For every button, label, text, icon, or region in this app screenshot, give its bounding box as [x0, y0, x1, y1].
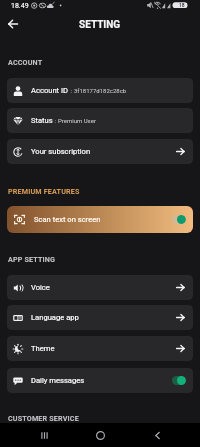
button[interactable]: Language app [7, 305, 193, 330]
button[interactable]: Theme [7, 336, 193, 361]
staticText: Account ID [31, 86, 69, 95]
staticText: 18 [179, 2, 185, 8]
staticText: Your subscription [31, 147, 91, 156]
staticText: Language app [31, 313, 79, 322]
button[interactable]: Home [86, 423, 114, 447]
staticText: CUSTOMER SERVICE [8, 414, 79, 422]
staticText: Voice [31, 283, 50, 292]
button[interactable]: Back [143, 423, 171, 447]
staticText: PREMIUM FEATURES [8, 187, 80, 195]
button[interactable]: Daily messages [7, 368, 193, 393]
staticText: 18.49 [11, 2, 29, 10]
staticText: : [53, 117, 58, 124]
button[interactable]: Back [4, 13, 22, 35]
button[interactable]: Account ID [7, 78, 193, 103]
button[interactable]: Voice [7, 275, 193, 300]
staticText: Premium User [58, 117, 96, 124]
button[interactable]: Scan text on screen [7, 206, 193, 233]
button[interactable]: Recent apps [30, 423, 58, 447]
button[interactable]: Your subscription [7, 139, 193, 164]
staticText: APP SETTING [8, 255, 56, 263]
staticText: : [69, 87, 74, 94]
staticText: Daily messages [31, 376, 85, 385]
staticText: 3f18177d182c28cb [74, 87, 127, 94]
button[interactable]: Toggle [172, 215, 186, 224]
staticText: Scan text on screen [34, 215, 101, 224]
staticText: ACCOUNT [8, 58, 43, 66]
button[interactable]: Status [7, 108, 193, 133]
staticText: SETTING [79, 19, 121, 31]
button[interactable]: Toggle [172, 376, 186, 385]
staticText: Theme [31, 344, 55, 353]
staticText: Status [31, 116, 53, 125]
